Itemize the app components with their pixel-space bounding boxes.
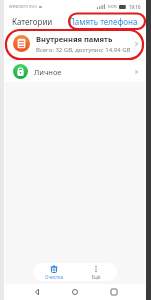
- staticText: Категории: [12, 16, 53, 27]
- staticText: Память телефона: [69, 16, 138, 27]
- staticText: 100%: [107, 4, 118, 9]
- staticText: Очистка: [45, 274, 63, 280]
- staticText: Всего: 32 GB, доступно: 14,94 GB: [36, 46, 131, 54]
- staticText: 19:16: [129, 4, 141, 10]
- staticText: Ещё: [91, 274, 101, 280]
- button[interactable]: Внутренняя память: [5, 29, 145, 58]
- button[interactable]: Ещё: [75, 263, 117, 281]
- staticText: WINDMTS RUS: [9, 4, 37, 9]
- staticText: Внутренняя память: [36, 34, 113, 44]
- button[interactable]: Back: [30, 285, 44, 299]
- button[interactable]: Recent apps: [107, 285, 121, 299]
- button[interactable]: Личное: [5, 61, 145, 82]
- button[interactable]: Home: [68, 285, 82, 299]
- staticText: Личное: [34, 67, 134, 77]
- button[interactable]: Категории: [7, 14, 58, 29]
- button[interactable]: Очистка: [33, 263, 75, 281]
- button[interactable]: Память телефона: [64, 14, 143, 29]
